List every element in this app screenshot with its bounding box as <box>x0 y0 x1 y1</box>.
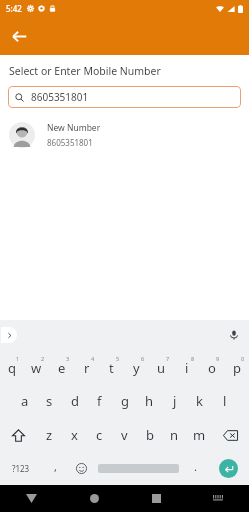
staticText: g <box>121 392 129 410</box>
button[interactable]: q <box>0 350 24 384</box>
button[interactable]: m <box>187 418 212 452</box>
button[interactable]: , <box>42 452 68 485</box>
button[interactable]: s <box>37 384 62 418</box>
button[interactable]: f <box>87 384 112 418</box>
button[interactable]: u <box>149 350 174 384</box>
button[interactable]: y <box>124 350 149 384</box>
staticText: n <box>170 426 179 444</box>
staticText: 3 <box>66 355 70 362</box>
button[interactable]: j <box>162 384 187 418</box>
staticText: 6 <box>141 355 145 362</box>
staticText: p <box>233 359 241 377</box>
button[interactable]: d <box>62 384 87 418</box>
staticText: a <box>21 392 29 410</box>
staticText: Select or Enter Mobile Number <box>9 64 161 78</box>
button[interactable]: r <box>74 350 99 384</box>
staticText: c <box>96 426 103 444</box>
staticText: 2 <box>41 355 45 362</box>
button[interactable]: k <box>187 384 212 418</box>
staticText: 7 <box>166 355 170 362</box>
staticText: , <box>54 459 57 474</box>
staticText: 5:42 <box>6 3 22 14</box>
button[interactable]: Switch keyboard <box>187 485 249 512</box>
staticText: 4 <box>91 355 95 362</box>
staticText: j <box>173 392 177 410</box>
staticText: 0 <box>241 355 245 362</box>
staticText: q <box>8 359 16 377</box>
staticText: w <box>31 359 42 377</box>
button[interactable]: Back <box>0 485 63 512</box>
button[interactable]: Voice input <box>225 326 243 344</box>
button[interactable]: z <box>37 418 62 452</box>
staticText: d <box>71 392 79 410</box>
button[interactable]: p <box>224 350 249 384</box>
button[interactable]: e <box>49 350 74 384</box>
staticText: e <box>58 359 66 377</box>
staticText: 8605351801 <box>47 137 93 148</box>
button[interactable]: n <box>162 418 187 452</box>
staticText: y <box>133 359 140 377</box>
button[interactable]: . <box>182 452 208 485</box>
staticText: b <box>146 426 154 444</box>
staticText: x <box>71 426 78 444</box>
button[interactable]: c <box>87 418 112 452</box>
button[interactable]: i <box>174 350 199 384</box>
staticText: r <box>84 359 90 377</box>
button[interactable]: ?123 <box>0 452 42 485</box>
staticText: 5 <box>116 355 120 362</box>
staticText: s <box>46 392 53 410</box>
staticText: 1 <box>16 355 20 362</box>
staticText: m <box>193 426 206 444</box>
button[interactable]: Shift <box>0 418 37 452</box>
staticText: v <box>121 426 128 444</box>
button[interactable]: Recents <box>125 485 187 512</box>
staticText: New Number <box>47 122 101 134</box>
button[interactable]: x <box>62 418 87 452</box>
staticText: i <box>185 359 189 377</box>
staticText: 9 <box>216 355 220 362</box>
staticText: z <box>46 426 53 444</box>
staticText: ?123 <box>12 463 30 474</box>
button[interactable]: h <box>137 384 162 418</box>
staticText: k <box>196 392 203 410</box>
button[interactable]: l <box>212 384 237 418</box>
staticText: o <box>208 359 216 377</box>
button[interactable]: Back <box>4 21 34 51</box>
staticText: 8 <box>191 355 195 362</box>
staticText: . <box>194 459 197 474</box>
staticText: 8605351801 <box>31 90 89 104</box>
staticText: l <box>223 392 227 410</box>
button[interactable]: Space <box>94 452 182 485</box>
button[interactable]: g <box>112 384 137 418</box>
button[interactable]: Expand toolbar <box>1 327 17 343</box>
staticText: u <box>157 359 166 377</box>
staticText: f <box>97 392 102 410</box>
button[interactable]: 8605351801 <box>8 86 241 108</box>
button[interactable]: b <box>137 418 162 452</box>
button[interactable]: Backspace <box>212 418 249 452</box>
staticText: h <box>145 392 154 410</box>
button[interactable]: o <box>199 350 224 384</box>
button[interactable]: Emoji <box>68 452 94 485</box>
button[interactable]: a <box>12 384 37 418</box>
button[interactable]: w <box>24 350 49 384</box>
button[interactable]: t <box>99 350 124 384</box>
staticText: t <box>109 359 114 377</box>
button[interactable]: New Number <box>0 117 249 153</box>
button[interactable]: v <box>112 418 137 452</box>
button[interactable]: Home <box>63 485 125 512</box>
button[interactable]: Enter <box>208 452 249 485</box>
